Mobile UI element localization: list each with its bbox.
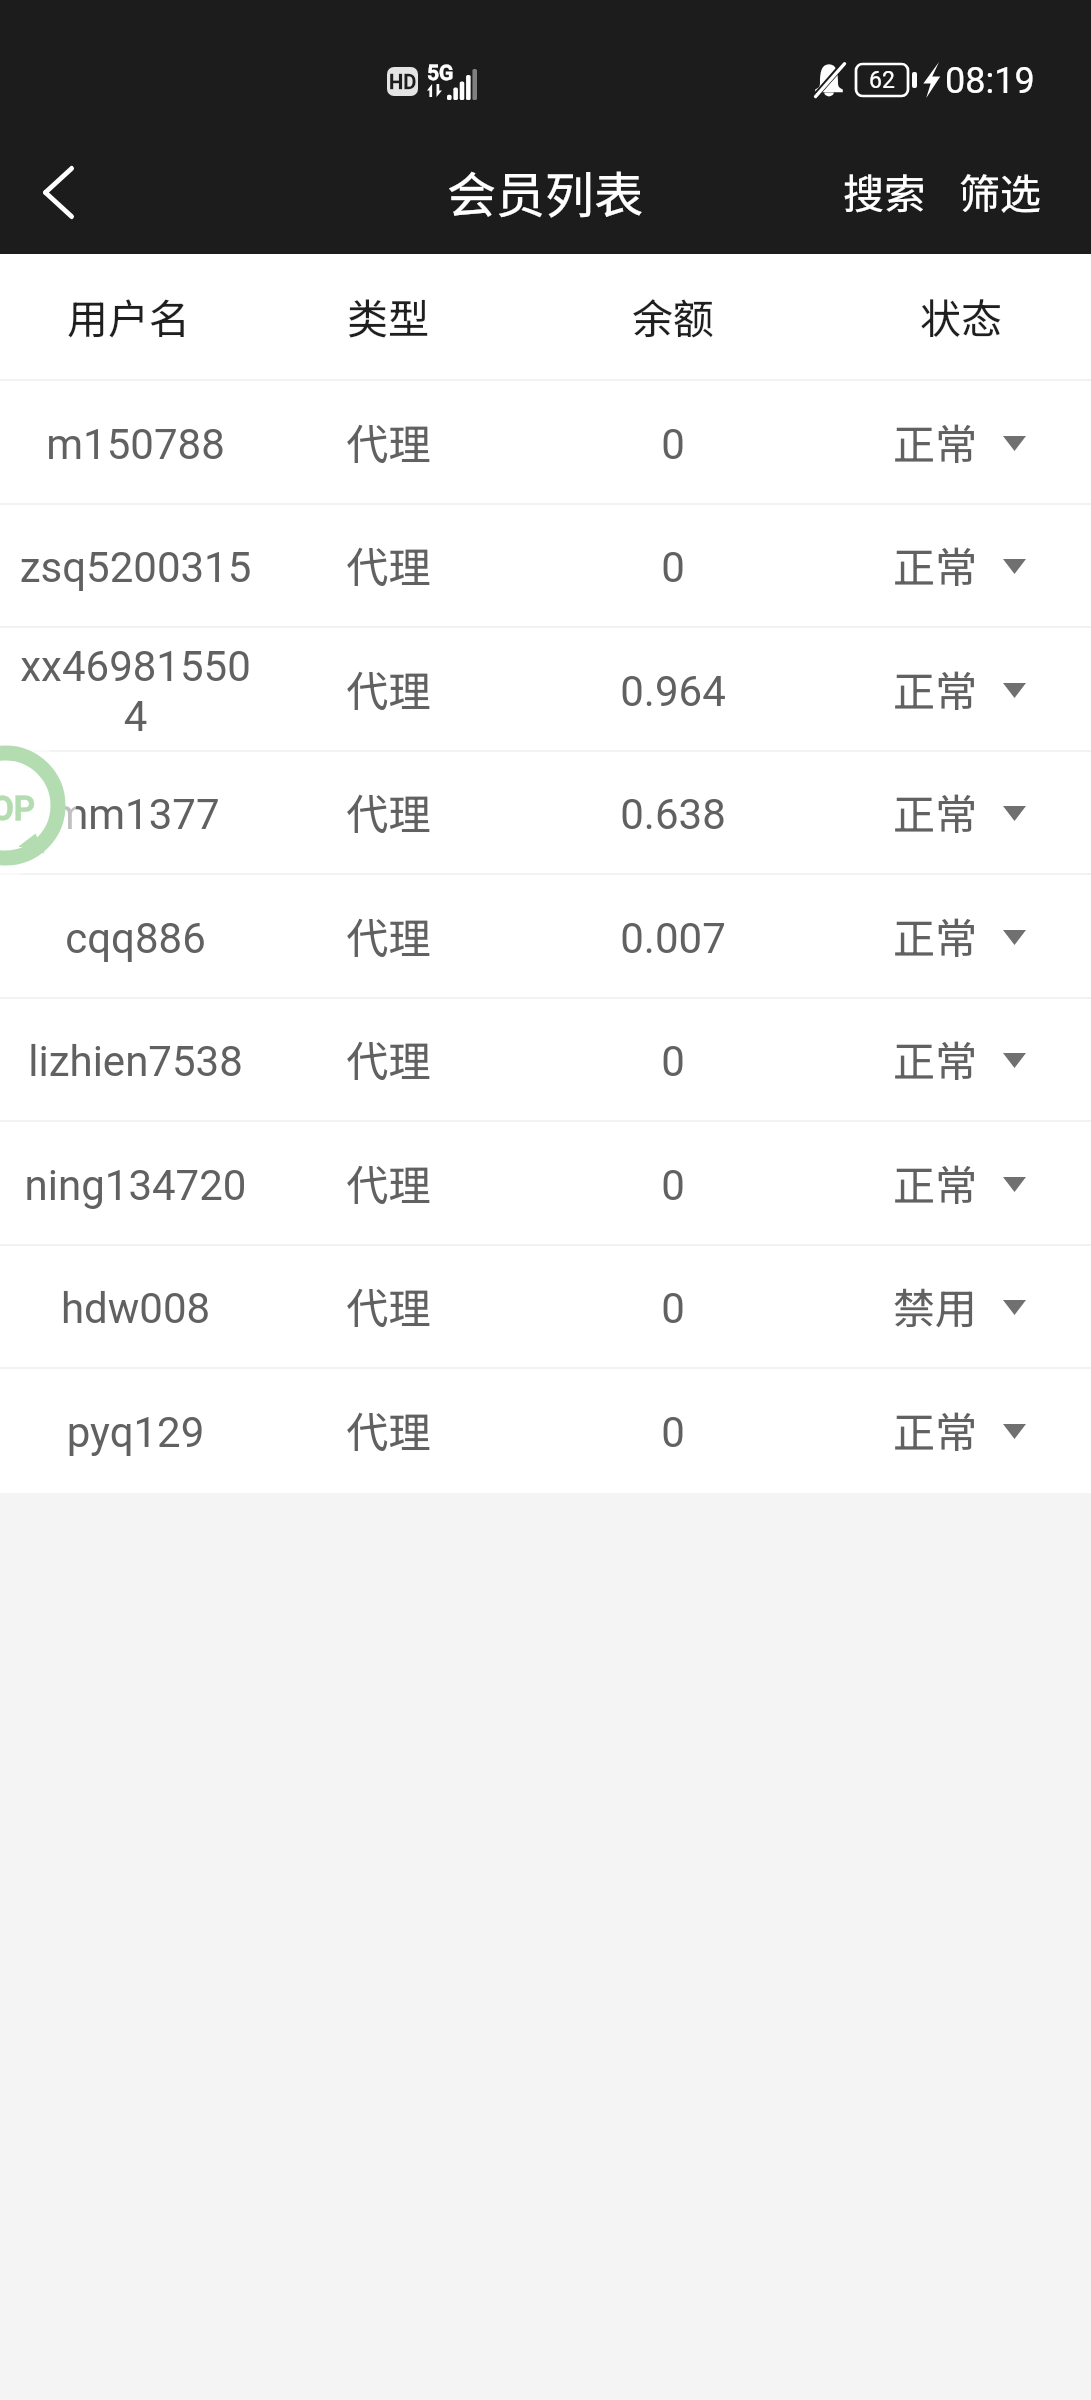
staticText: m150788	[7, 420, 264, 469]
button[interactable]: Customer service	[0, 725, 86, 886]
button[interactable]: mm1377	[0, 752, 1091, 875]
staticText: cqq886	[7, 914, 264, 963]
staticText: 0.964	[620, 667, 726, 716]
button[interactable]: 正常	[841, 875, 1080, 999]
staticText: ning134720	[7, 1161, 264, 1210]
staticText: hdw008	[7, 1284, 264, 1333]
button[interactable]: 正常	[841, 752, 1080, 875]
button[interactable]: 正常	[841, 381, 1080, 505]
staticText: zsq5200315	[7, 543, 264, 592]
button[interactable]: cqq886	[0, 875, 1091, 999]
button[interactable]: 正常	[841, 999, 1080, 1122]
button[interactable]: 正常	[841, 628, 1080, 752]
staticText: 0	[661, 1161, 685, 1210]
button[interactable]: 禁用	[841, 1246, 1080, 1369]
staticText: 搜索	[843, 161, 925, 220]
staticText: 代理	[346, 1275, 431, 1336]
staticText: 余额	[632, 286, 714, 345]
staticText: 正常	[893, 1399, 978, 1460]
button[interactable]: m150788	[0, 381, 1091, 505]
button[interactable]: zsq5200315	[0, 505, 1091, 628]
staticText: 代理	[346, 1028, 431, 1089]
button[interactable]: 正常	[841, 1122, 1080, 1246]
staticText: 正常	[893, 905, 978, 966]
staticText: 正常	[893, 534, 978, 595]
staticText: 代理	[346, 411, 431, 472]
staticText: 5G	[427, 61, 454, 86]
staticText: 08:19	[945, 60, 1035, 102]
staticText: xx46981550 4	[7, 642, 264, 741]
button[interactable]: 正常	[841, 1369, 1080, 1493]
button[interactable]: 搜索	[831, 131, 945, 254]
staticText: 代理	[346, 1152, 431, 1213]
staticText: 0	[661, 1284, 685, 1333]
staticText: 代理	[346, 534, 431, 595]
staticText: 正常	[893, 1028, 978, 1089]
staticText: 正常	[893, 658, 978, 719]
staticText: 筛选	[959, 161, 1041, 220]
staticText: 0	[661, 420, 685, 469]
staticText: 0	[661, 543, 685, 592]
button[interactable]: hdw008	[0, 1246, 1091, 1369]
staticText: 代理	[346, 905, 431, 966]
staticText: OP	[0, 789, 35, 828]
staticText: 正常	[893, 1152, 978, 1213]
staticText: 状态	[920, 286, 1002, 345]
staticText: lizhien7538	[7, 1037, 264, 1086]
button[interactable]: Back	[0, 131, 116, 254]
staticText: 代理	[346, 781, 431, 842]
staticText: 0	[661, 1408, 685, 1457]
staticText: pyq129	[7, 1408, 264, 1457]
staticText: mm1377	[7, 790, 264, 839]
button[interactable]: ning134720	[0, 1122, 1091, 1246]
staticText: 代理	[346, 658, 431, 719]
button[interactable]: xx46981550 4	[0, 628, 1091, 752]
staticText: 0.007	[620, 914, 726, 963]
staticText: 代理	[346, 1399, 431, 1460]
staticText: 类型	[347, 286, 429, 345]
staticText: 用户名	[67, 286, 190, 345]
staticText: 正常	[893, 781, 978, 842]
button[interactable]: pyq129	[0, 1369, 1091, 1493]
staticText: 禁用	[893, 1275, 978, 1336]
button[interactable]: 筛选	[945, 131, 1091, 254]
button[interactable]: lizhien7538	[0, 999, 1091, 1122]
staticText: 62	[869, 67, 895, 94]
staticText: HD	[389, 70, 417, 93]
staticText: 0	[661, 1037, 685, 1086]
staticText: 0.638	[620, 790, 726, 839]
staticText: 正常	[893, 411, 978, 472]
staticText: 会员列表	[447, 156, 644, 227]
button[interactable]: 正常	[841, 505, 1080, 628]
